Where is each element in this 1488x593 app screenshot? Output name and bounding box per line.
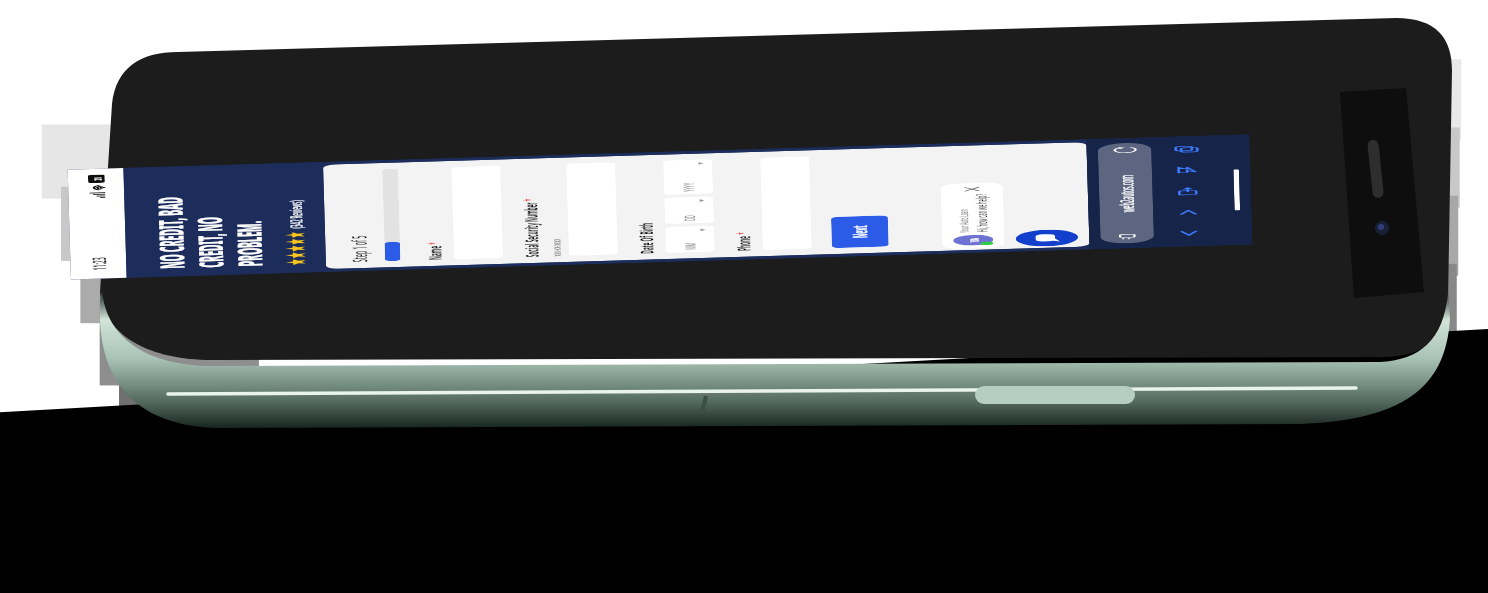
staticText: Social Security Number	[518, 202, 544, 257]
staticText: web2autos.com	[1113, 174, 1140, 213]
button[interactable]: Bookmarks	[1158, 162, 1215, 178]
button[interactable]: Close chat	[959, 186, 984, 193]
button[interactable]: DD	[664, 196, 714, 224]
button[interactable]: Tabs	[1158, 141, 1214, 157]
staticText: *	[422, 242, 445, 245]
button[interactable]: MM	[665, 225, 715, 253]
button[interactable]: Share	[1159, 183, 1215, 200]
staticText: 11:23	[86, 257, 112, 271]
button[interactable]	[451, 165, 503, 259]
button[interactable]: Reader view	[1098, 142, 1154, 244]
staticText: *	[731, 232, 753, 235]
staticText: xxx-xx-xxxx	[547, 238, 564, 257]
other: Reader view	[1118, 234, 1137, 239]
staticText: YA	[965, 238, 982, 242]
staticText: (342 Reviews)	[284, 200, 307, 229]
staticText: Next	[846, 225, 874, 238]
button[interactable]: Forward	[1160, 204, 1216, 220]
staticText: Hi, how can we help?	[971, 194, 992, 232]
button[interactable]: YA	[940, 182, 1005, 249]
staticText: YYYY	[678, 182, 699, 192]
button[interactable]: Open chat	[1015, 229, 1078, 247]
staticText: NO CREDIT, BAD CREDIT, NO PROBLEM.	[146, 169, 272, 269]
other: Reload	[1114, 147, 1136, 153]
button[interactable]: YYYY	[663, 159, 713, 195]
staticText: 21	[90, 177, 104, 180]
staticText: Step 1 of 5	[345, 235, 374, 263]
button[interactable]: Back	[1160, 225, 1216, 242]
staticText: Date Of Birth	[634, 222, 659, 254]
staticText: DD	[679, 215, 699, 221]
staticText: MM	[680, 242, 700, 250]
staticText: Phone	[731, 235, 756, 251]
button[interactable]	[760, 156, 812, 250]
button[interactable]: Next	[831, 215, 889, 248]
staticText: Your Auto Loan Personal ...	[954, 194, 972, 233]
staticText: *	[518, 198, 540, 201]
staticText: Name	[422, 245, 447, 260]
button[interactable]	[566, 162, 618, 256]
